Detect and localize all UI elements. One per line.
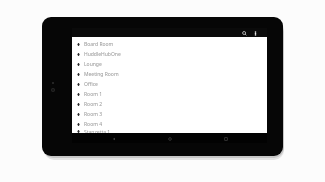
- button[interactable]: More options: [251, 29, 259, 37]
- button[interactable]: Board Room: [72, 39, 267, 49]
- staticText: HuddleHubOne: [84, 51, 121, 58]
- staticText: Room 4: [84, 121, 102, 128]
- button[interactable]: Back: [109, 134, 118, 143]
- staticText: Meeting Room: [84, 71, 119, 78]
- staticText: Room 1: [84, 91, 102, 98]
- staticText: Room 2: [84, 101, 102, 108]
- button[interactable]: Meeting Room: [72, 69, 267, 79]
- staticText: Board Room: [84, 41, 114, 48]
- button[interactable]: Room 2: [72, 99, 267, 109]
- staticText: Room 3: [84, 111, 102, 118]
- button[interactable]: Room 3: [72, 109, 267, 119]
- staticText: Lounge: [84, 61, 102, 68]
- button[interactable]: Home: [165, 134, 174, 143]
- button[interactable]: Office: [72, 79, 267, 89]
- button[interactable]: Search: [240, 29, 248, 37]
- button[interactable]: HuddleHubOne: [72, 49, 267, 59]
- button[interactable]: Room 4: [72, 119, 267, 129]
- button[interactable]: Stanzetta 1: [72, 129, 267, 133]
- staticText: Stanzetta 1: [84, 129, 111, 133]
- button[interactable]: Room 1: [72, 89, 267, 99]
- button[interactable]: Lounge: [72, 59, 267, 69]
- button[interactable]: Recent apps: [221, 134, 230, 143]
- staticText: Office: [84, 81, 98, 88]
